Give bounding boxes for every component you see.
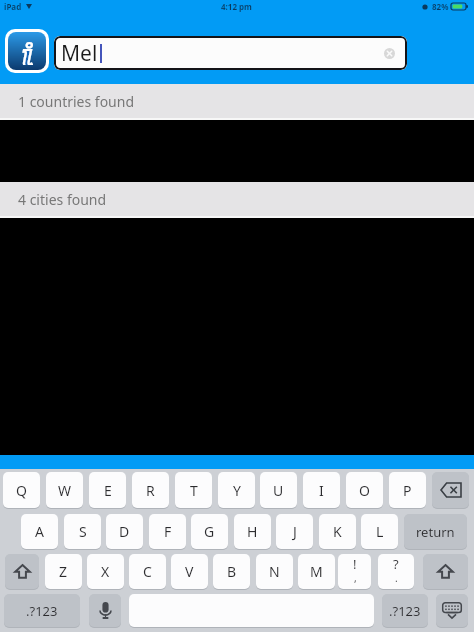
button[interactable]: J — [276, 514, 313, 549]
staticText: L — [376, 522, 384, 541]
staticText: M — [310, 562, 323, 581]
button[interactable]: U — [260, 472, 297, 508]
staticText: ? — [393, 555, 399, 573]
staticText: i — [22, 35, 33, 65]
button[interactable]: F — [149, 514, 186, 549]
button[interactable]: E — [89, 472, 126, 508]
button[interactable]: Info — [8, 32, 46, 70]
staticText: A — [35, 522, 44, 541]
staticText: i — [22, 35, 33, 65]
button[interactable]: B — [213, 554, 250, 589]
staticText: Mel — [61, 39, 98, 68]
staticText: return — [416, 523, 455, 541]
staticText: 4 cities found — [18, 190, 107, 209]
staticText: .?123 — [26, 602, 58, 620]
button[interactable]: R — [132, 472, 169, 508]
staticText: 4:12 pm — [221, 1, 252, 12]
button[interactable]: Shift — [5, 554, 39, 589]
button[interactable]: O — [346, 472, 383, 508]
staticText: H — [247, 522, 258, 541]
staticText: G — [204, 522, 215, 541]
button[interactable]: Q — [3, 472, 40, 508]
staticText: U — [273, 481, 284, 500]
staticText: W — [58, 481, 72, 500]
button[interactable]: D — [106, 514, 143, 549]
staticText: C — [143, 562, 152, 581]
staticText: Q — [16, 481, 27, 500]
staticText: O — [359, 481, 370, 500]
staticText: iPad — [4, 1, 22, 12]
button[interactable]: ! — [338, 554, 371, 589]
button[interactable]: M — [298, 554, 335, 589]
button[interactable]: ? — [378, 554, 414, 589]
staticText: S — [79, 522, 87, 541]
staticText: i — [22, 35, 33, 65]
button[interactable]: Clear text — [380, 44, 398, 62]
button[interactable]: Mel — [54, 36, 407, 70]
button[interactable]: Y — [218, 472, 255, 508]
staticText: P — [403, 481, 412, 500]
staticText: . — [395, 571, 398, 585]
button[interactable]: W — [46, 472, 83, 508]
staticText: B — [227, 562, 237, 581]
staticText: Z — [59, 562, 68, 581]
staticText: V — [185, 562, 194, 581]
button[interactable]: Backspace — [432, 472, 469, 508]
button[interactable]: P — [389, 472, 426, 508]
staticText: .?123 — [389, 602, 421, 620]
button[interactable]: I — [303, 472, 340, 508]
button[interactable]: .?123 — [4, 594, 80, 627]
button[interactable]: .?123 — [382, 594, 428, 627]
button[interactable]: Hide keyboard — [436, 594, 468, 627]
staticText: E — [104, 481, 112, 500]
button[interactable]: S — [64, 514, 101, 549]
staticText: R — [146, 481, 155, 500]
staticText: K — [333, 522, 342, 541]
staticText: D — [119, 522, 130, 541]
button[interactable]: L — [361, 514, 398, 549]
staticText: N — [269, 562, 280, 581]
staticText: Y — [233, 481, 241, 500]
staticText: 1 countries found — [18, 92, 135, 111]
staticText: ! — [353, 555, 357, 573]
button[interactable]: G — [191, 514, 228, 549]
button[interactable]: Shift — [423, 554, 468, 589]
button[interactable]: A — [21, 514, 58, 549]
staticText: 82% — [432, 1, 449, 12]
button[interactable]: N — [256, 554, 293, 589]
button[interactable]: H — [234, 514, 271, 549]
button[interactable]: Dictation — [89, 594, 121, 627]
staticText: T — [190, 481, 198, 500]
button[interactable]: return — [404, 514, 467, 549]
button[interactable]: X — [87, 554, 124, 589]
button[interactable]: C — [129, 554, 166, 589]
button[interactable]: V — [171, 554, 208, 589]
button[interactable]: Z — [45, 554, 82, 589]
staticText: J — [293, 522, 297, 541]
staticText: , — [354, 571, 357, 585]
button[interactable]: T — [175, 472, 212, 508]
button[interactable]: K — [319, 514, 356, 549]
staticText: F — [164, 522, 172, 541]
staticText: I — [319, 481, 324, 500]
staticText: X — [101, 562, 110, 581]
